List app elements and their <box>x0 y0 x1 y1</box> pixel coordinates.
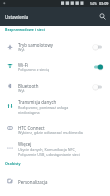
button[interactable] <box>0 140 110 161</box>
button[interactable] <box>0 119 110 139</box>
button: Bezprzewodowe i sieci <box>5 27 45 32</box>
staticText: Wi-Fi <box>18 62 29 68</box>
staticText: Wył. <box>18 47 26 52</box>
staticText: Wył. <box>18 88 26 93</box>
button: Osobisty <box>5 161 21 166</box>
staticText: Rozłączono, ponieważ usługa niedostępna <box>18 105 69 115</box>
button[interactable] <box>0 172 110 192</box>
staticText: Ustawienia <box>5 14 29 20</box>
staticText: Więcej <box>18 141 32 147</box>
staticText: Transmisja danych <box>18 99 57 105</box>
button[interactable] <box>0 98 110 120</box>
staticText: 03:09 <box>99 1 109 6</box>
button[interactable] <box>0 57 110 77</box>
staticText: Wybierz, gdzie odtwarzać multimedia <box>18 130 83 135</box>
button[interactable] <box>91 62 105 72</box>
staticText: Tryb samolotowy <box>18 42 54 48</box>
button[interactable] <box>91 42 105 52</box>
staticText: Użycie danych, Komunikacja NFC, Połączen… <box>18 147 80 157</box>
button[interactable] <box>0 77 110 97</box>
button[interactable]: Szukaj <box>94 7 110 26</box>
staticText: 54% <box>90 1 97 6</box>
button[interactable] <box>0 37 110 57</box>
staticText: HTC Connect <box>18 125 45 131</box>
staticText: Personalizacja <box>18 179 48 185</box>
staticText: Bluetooth <box>18 83 39 89</box>
button[interactable] <box>91 82 105 92</box>
staticText: Połączono z siecią <box>18 67 49 72</box>
